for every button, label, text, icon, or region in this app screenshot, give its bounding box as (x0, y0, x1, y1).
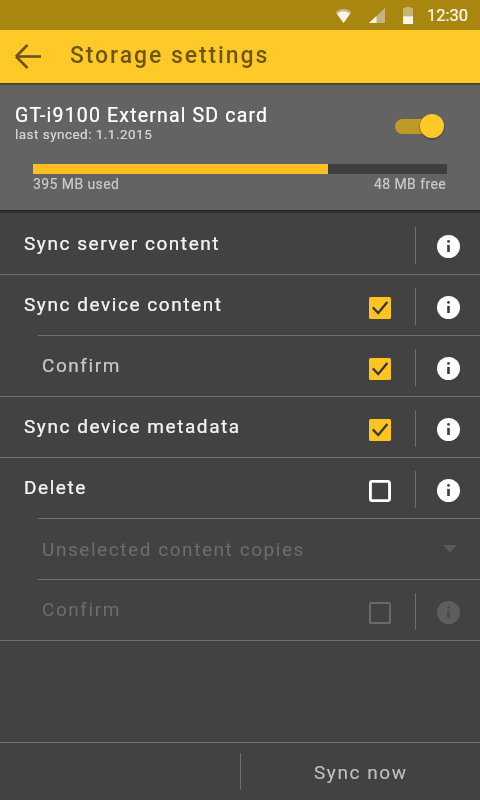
button[interactable]: More info about Sync device content (417, 277, 480, 337)
button[interactable]: Toggle Confirm (358, 347, 402, 391)
staticText: GT-i9100 External SD card (15, 104, 269, 127)
staticText: Confirm (42, 354, 121, 376)
button[interactable]: Enable sync (393, 112, 447, 140)
button[interactable]: Confirm (0, 580, 480, 640)
button[interactable]: More info about Sync device metadata (417, 399, 480, 459)
button[interactable]: Toggle Sync device content (358, 286, 402, 330)
staticText: Sync device metadata (24, 415, 241, 437)
staticText: Delete (24, 476, 87, 498)
staticText: Confirm (42, 598, 121, 620)
staticText: 12:30 (427, 6, 469, 25)
button[interactable]: Unselected content copies (0, 519, 480, 579)
button[interactable]: Sync device metadata (0, 397, 480, 457)
button[interactable]: Toggle Confirm (358, 591, 402, 635)
staticText: Unselected content copies (42, 538, 305, 560)
button[interactable]: Sync now (241, 743, 480, 800)
button[interactable]: Sync device content (0, 275, 480, 335)
button[interactable]: Delete (0, 458, 480, 518)
button[interactable]: Sync server content (0, 214, 480, 274)
button[interactable]: More info about Delete (417, 460, 480, 520)
staticText: Sync now (314, 761, 408, 783)
staticText: 395 MB used (33, 176, 120, 192)
button[interactable]: Back (16, 45, 41, 68)
staticText: Sync device content (24, 293, 223, 315)
staticText: Sync server content (24, 232, 221, 254)
staticText: Storage settings (70, 42, 270, 69)
button[interactable]: More info about Sync server content (417, 216, 480, 276)
staticText: last synced: 1.1.2015 (15, 126, 153, 142)
button[interactable]: More info about Confirm (417, 582, 480, 642)
button[interactable]: More info about Confirm (417, 338, 480, 398)
staticText: 48 MB free (374, 176, 447, 192)
button[interactable]: Confirm (0, 336, 480, 396)
button[interactable]: Toggle Sync device metadata (358, 408, 402, 452)
button[interactable]: Toggle Delete (358, 469, 402, 513)
